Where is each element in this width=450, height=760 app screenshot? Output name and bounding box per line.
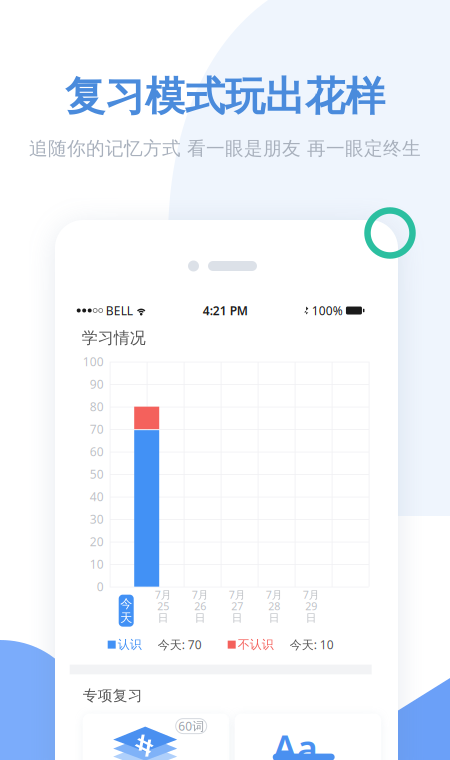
staticText: BELL [106, 302, 133, 318]
staticText: 专项复习 [83, 687, 143, 705]
staticText: 27 [231, 599, 243, 613]
staticText: 今天: 70 [158, 637, 202, 653]
staticText: 今 [120, 596, 132, 611]
staticText: 26 [194, 599, 206, 613]
staticText: 29 [305, 599, 317, 613]
staticText: 7月 [303, 587, 320, 602]
staticText: 日 [232, 611, 243, 624]
staticText: 7月 [229, 587, 246, 602]
staticText: 日 [195, 611, 206, 624]
staticText: 70 [90, 421, 104, 437]
staticText: 4:21 PM [203, 302, 248, 318]
staticText: 追随你的记忆方式 看一眼是朋友 再一眼定终生 [29, 137, 421, 160]
staticText: 60 [90, 444, 104, 460]
staticText: 不认识 [238, 637, 274, 652]
staticText: 100 [83, 354, 104, 370]
staticText: 25 [157, 599, 169, 613]
staticText: 0 [97, 579, 104, 595]
staticText: 7月 [192, 587, 209, 602]
staticText: 今天: 10 [290, 637, 334, 653]
button[interactable]: 60词 [83, 714, 229, 760]
staticText: 40 [90, 489, 104, 505]
staticText: 日 [158, 611, 169, 624]
staticText: 30 [90, 511, 104, 527]
staticText: 90 [90, 376, 104, 392]
staticText: 7月 [155, 587, 172, 602]
staticText: 天 [120, 610, 132, 625]
button[interactable]: Aa [235, 714, 381, 760]
staticText: 50 [90, 466, 104, 482]
staticText: 学习情况 [82, 328, 146, 348]
staticText: 日 [306, 611, 317, 624]
staticText: 日 [269, 611, 280, 624]
staticText: Aa [273, 724, 318, 760]
staticText: 20 [90, 534, 104, 550]
staticText: 复习模式玩出花样 [65, 72, 385, 121]
staticText: 100% [312, 302, 343, 318]
staticText: 80 [90, 399, 104, 415]
staticText: 28 [268, 599, 280, 613]
staticText: 10 [90, 556, 104, 572]
staticText: 认识 [118, 637, 142, 652]
staticText: 7月 [266, 587, 283, 602]
staticText: 60词 [178, 718, 204, 734]
